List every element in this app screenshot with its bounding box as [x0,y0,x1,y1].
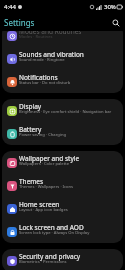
staticText: Security and privacy [19,252,81,261]
staticText: Brightness · Eye comfort shield · Naviga… [19,109,112,115]
staticText: Modes and Routines [19,27,82,36]
staticText: 4:44 [4,3,16,11]
button[interactable]: Home screen [2,197,123,220]
staticText: Themes · Wallpapers · Icons [19,184,74,190]
staticText: Battery [19,125,42,134]
staticText: Power saving · Charging [19,132,67,138]
staticText: Wallpapers · Color palette [19,161,70,167]
staticText: Home screen [19,200,60,209]
button[interactable]: Modes and Routines [2,24,123,47]
button[interactable]: Sounds and vibration [2,47,123,70]
button[interactable]: Wallpaper and style [2,151,123,174]
button[interactable]: Display [2,99,123,122]
button[interactable]: Themes [2,174,123,197]
button[interactable]: Lock screen and AOD [2,220,123,243]
staticText: Settings [4,17,35,28]
staticText: Status bar · Do not disturb [19,80,71,86]
button[interactable]: Notifications [2,70,123,93]
staticText: Sounds and vibration [19,50,84,59]
staticText: Notifications [19,73,58,82]
button[interactable]: Search [109,16,122,29]
button[interactable]: Battery [2,122,123,145]
staticText: 30% [104,3,116,11]
staticText: Sound mode · Ringtone [19,57,65,63]
staticText: Biometrics · Permissions [19,259,67,265]
staticText: Display [19,102,42,111]
staticText: Layout · App icon badges [19,207,68,213]
staticText: Screen lock type · Always On Display [19,230,90,236]
button[interactable]: Security and privacy [2,249,123,270]
staticText: Themes [19,177,44,186]
staticText: Modes · Routines [19,34,53,40]
staticText: Lock screen and AOD [19,223,84,232]
staticText: Wallpaper and style [19,154,80,163]
